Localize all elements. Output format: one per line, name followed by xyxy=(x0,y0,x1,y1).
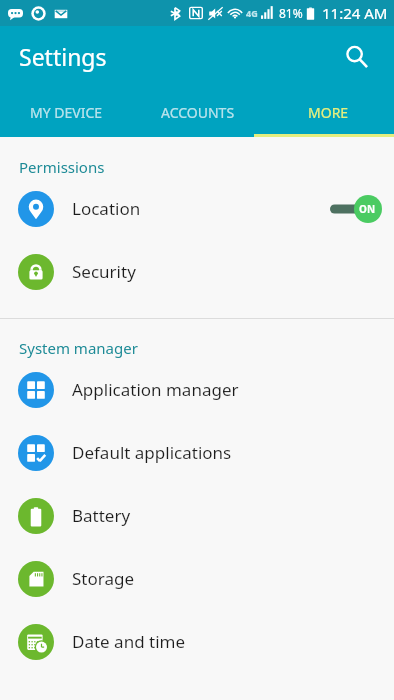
staticText: Settings xyxy=(19,41,107,72)
staticText: Location xyxy=(72,197,141,220)
button[interactable]: Security xyxy=(0,240,394,303)
staticText: Date and time xyxy=(72,630,186,653)
staticText: MORE xyxy=(308,103,349,122)
staticText: MY DEVICE xyxy=(30,103,103,122)
staticText: 81% xyxy=(279,5,303,21)
button[interactable]: ACCOUNTS xyxy=(132,87,263,137)
button[interactable]: Search xyxy=(334,34,380,80)
button[interactable]: Battery xyxy=(0,484,394,547)
staticText: ON xyxy=(359,202,376,216)
button[interactable]: Location xyxy=(0,177,394,240)
staticText: Default applications xyxy=(72,441,232,464)
staticText: 11:24 AM xyxy=(322,3,388,23)
staticText: 4G xyxy=(246,7,258,19)
staticText: Storage xyxy=(72,567,135,590)
staticText: Permissions xyxy=(19,157,105,177)
button[interactable]: Default applications xyxy=(0,421,394,484)
staticText: ACCOUNTS xyxy=(161,103,235,122)
staticText: Application manager xyxy=(72,378,239,401)
button[interactable]: MY DEVICE xyxy=(0,87,132,137)
button[interactable]: Application manager xyxy=(0,358,394,421)
staticText: Security xyxy=(72,260,136,283)
button[interactable]: Date and time xyxy=(0,610,394,673)
button[interactable]: MORE xyxy=(263,87,394,137)
staticText: Battery xyxy=(72,504,131,527)
staticText: System manager xyxy=(19,338,138,358)
button[interactable]: Storage xyxy=(0,547,394,610)
button[interactable]: Location on xyxy=(328,194,382,224)
